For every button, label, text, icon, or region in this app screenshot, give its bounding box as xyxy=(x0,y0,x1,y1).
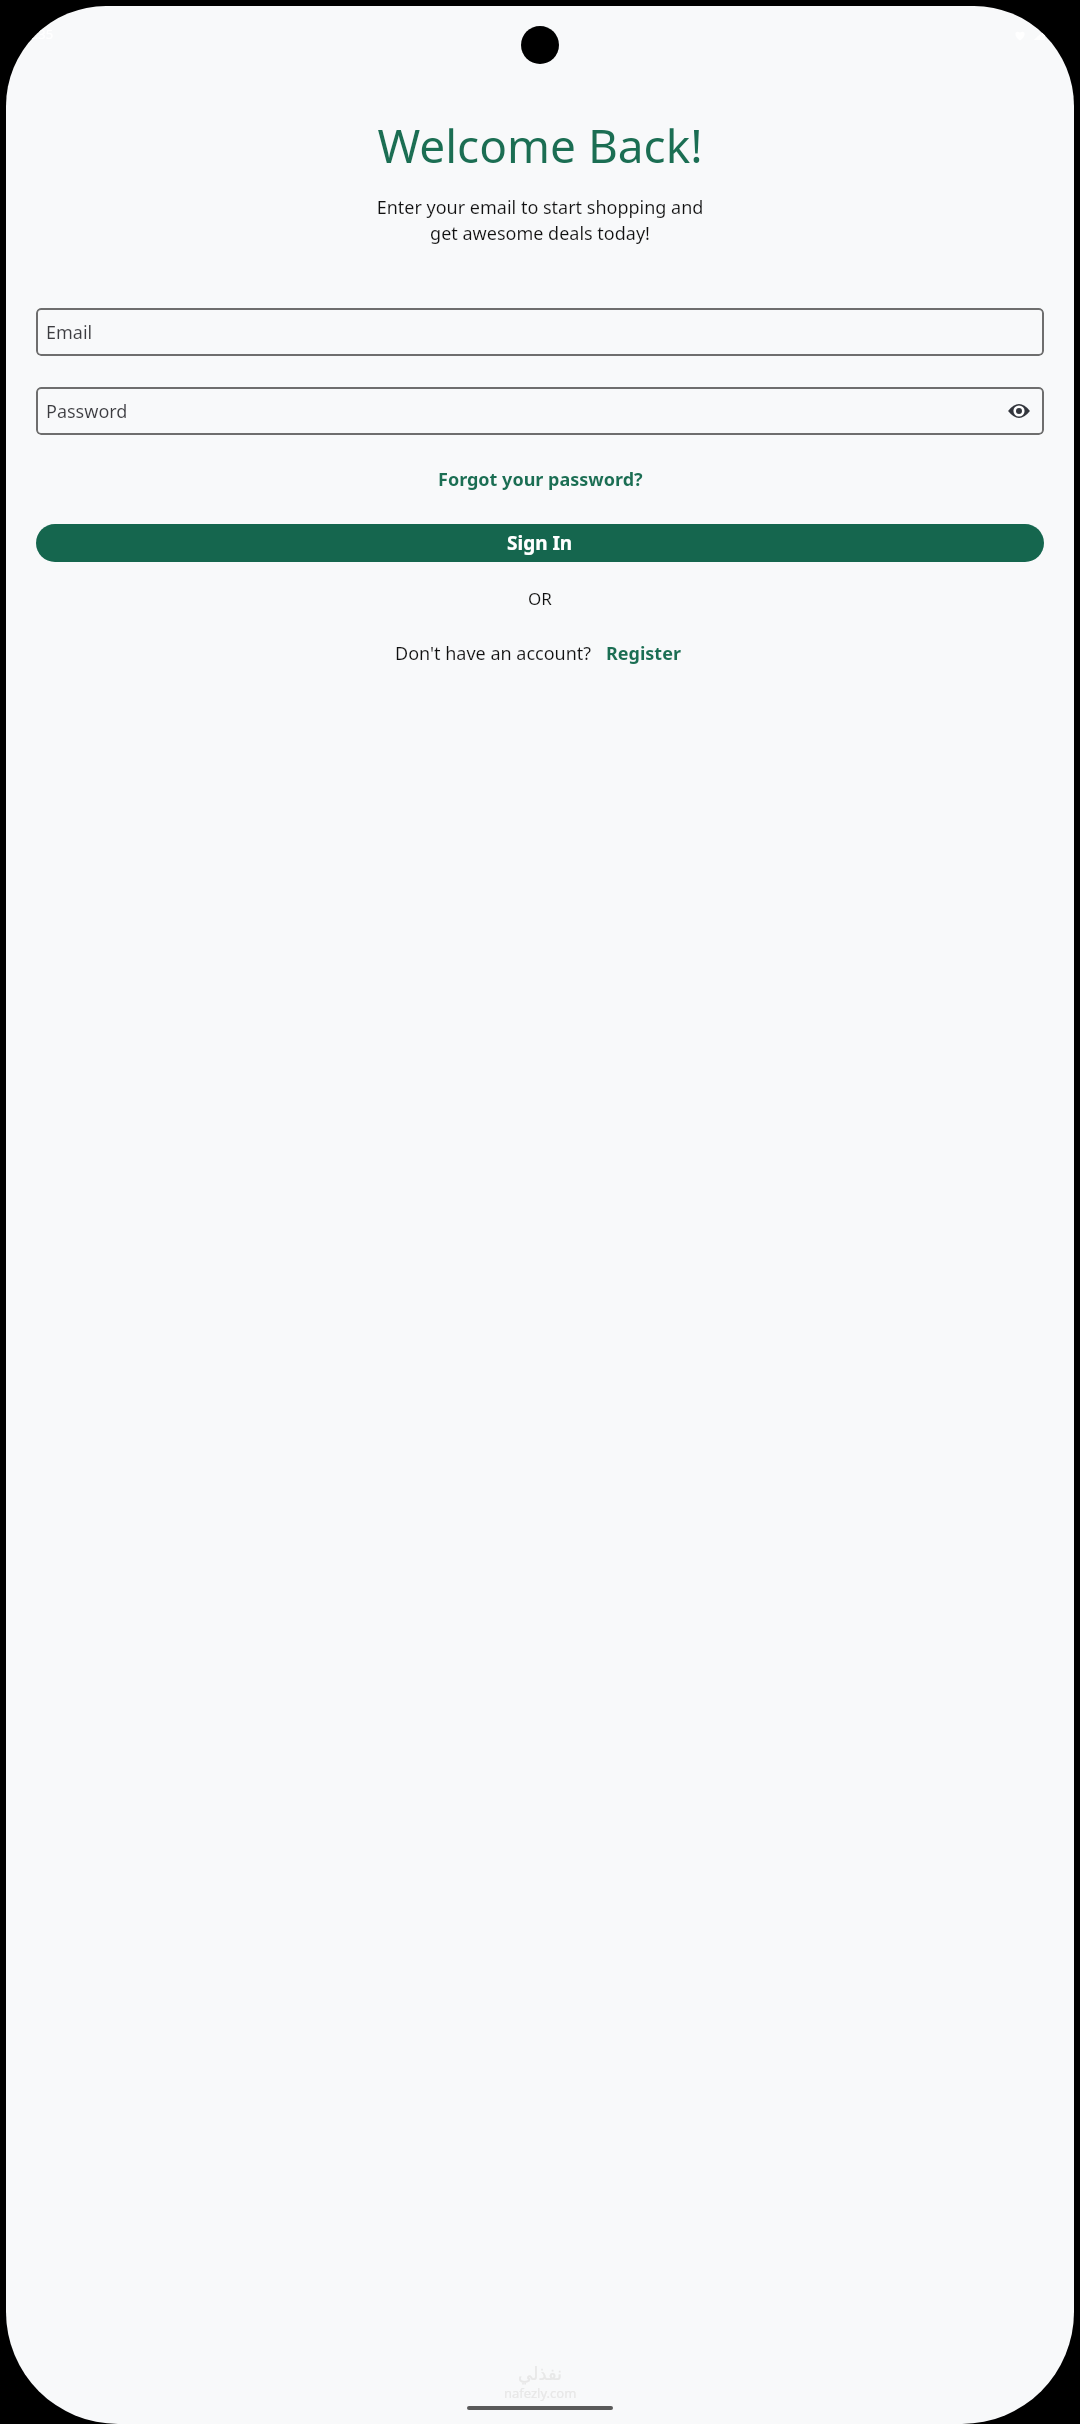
staticText: نفذلي xyxy=(518,2363,563,2384)
button[interactable]: Forgot your password? xyxy=(430,463,651,496)
staticText: Welcome Back! xyxy=(6,114,1074,177)
staticText: Sign In xyxy=(507,530,573,556)
button[interactable]: Password xyxy=(36,387,1044,435)
staticText: 12:35 xyxy=(20,25,54,43)
button[interactable]: Register xyxy=(602,637,685,670)
staticText: Forgot your password? xyxy=(438,467,643,492)
staticText: Password xyxy=(46,399,128,424)
staticText: Email xyxy=(46,320,93,345)
staticText: Register xyxy=(606,641,681,666)
button[interactable]: Show password xyxy=(1004,396,1034,426)
staticText: Don't have an account? xyxy=(395,641,592,666)
button[interactable]: Email xyxy=(36,308,1044,356)
staticText: OR xyxy=(6,587,1074,610)
staticText: Enter your email to start shopping and g… xyxy=(30,195,1050,246)
button[interactable]: Sign In xyxy=(36,524,1044,562)
staticText: nafezly.com xyxy=(504,2384,577,2402)
